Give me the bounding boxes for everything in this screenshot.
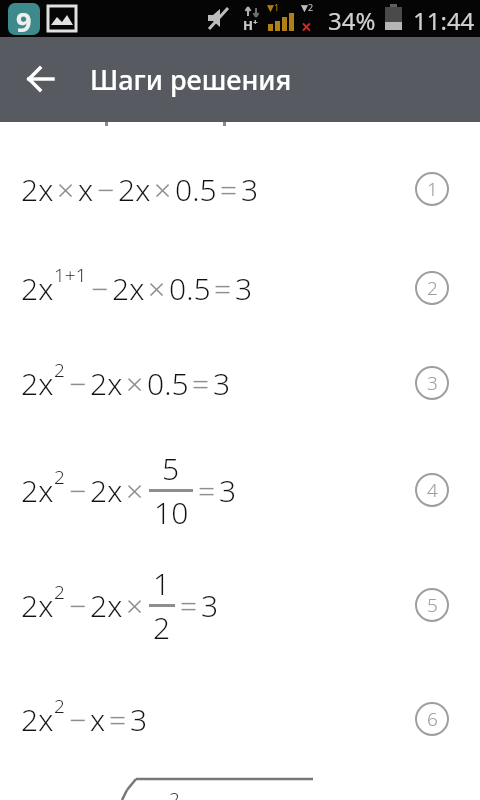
button[interactable]: 2x <box>21 669 148 769</box>
staticText: × <box>154 169 172 210</box>
staticText: ▼2 <box>301 1 314 13</box>
staticText: × <box>126 470 144 511</box>
button[interactable]: 5 <box>415 588 449 622</box>
staticText: − <box>69 585 87 626</box>
staticText: × <box>148 268 166 309</box>
staticText: × <box>57 169 75 210</box>
button[interactable]: 2x <box>21 139 259 239</box>
staticText: 2 <box>54 693 65 719</box>
staticText: 10 <box>154 492 189 533</box>
button[interactable]: 2x <box>21 333 231 433</box>
staticText: 2 <box>169 786 180 800</box>
staticText: 3 <box>427 370 438 396</box>
staticText: − <box>69 699 87 740</box>
staticText: = <box>192 363 210 404</box>
staticText: 3 <box>219 470 237 511</box>
staticText: ▼1 <box>267 1 280 13</box>
staticText: H⁺ <box>243 16 258 34</box>
staticText: 2x <box>112 268 145 309</box>
staticText: − <box>69 363 87 404</box>
staticText: − <box>91 268 109 309</box>
staticText: 2x <box>118 169 151 210</box>
staticText: 1 <box>427 176 438 202</box>
staticText: 0.5 <box>175 169 217 210</box>
staticText: 3 <box>213 363 231 404</box>
staticText: − <box>97 169 115 210</box>
button[interactable]: 2 <box>415 271 449 305</box>
staticText: 2 <box>54 357 65 383</box>
staticText: 2x <box>90 470 123 511</box>
staticText: 0.5 <box>147 363 189 404</box>
staticText: 1 <box>153 563 171 604</box>
staticText: 11:44 <box>413 4 475 37</box>
staticText: × <box>126 363 144 404</box>
staticText: x <box>78 169 94 210</box>
staticText: = <box>109 699 127 740</box>
staticText: × <box>301 14 312 40</box>
button[interactable]: 2x <box>21 555 219 655</box>
staticText: 2x <box>21 268 54 309</box>
staticText: × <box>126 585 144 626</box>
staticText: 5 <box>162 448 180 489</box>
staticText: 2x <box>140 792 173 800</box>
staticText: 2x <box>21 585 54 626</box>
button[interactable]: 4 <box>415 473 449 507</box>
staticText: − <box>69 470 87 511</box>
staticText: = <box>180 585 198 626</box>
button[interactable] <box>28 67 54 91</box>
staticText: x <box>90 699 106 740</box>
staticText: 3 <box>130 699 148 740</box>
staticText: 2 <box>427 275 438 301</box>
staticText: 2x <box>21 470 54 511</box>
staticText: 3 <box>241 169 259 210</box>
staticText: 9 <box>16 3 32 35</box>
staticText: 6 <box>427 706 438 732</box>
staticText: 5 <box>427 592 438 618</box>
staticText: 2x <box>21 363 54 404</box>
staticText: 2x <box>21 699 54 740</box>
button[interactable]: 6 <box>415 702 449 736</box>
staticText: 4 <box>427 477 438 503</box>
staticText: Шаги решения <box>90 61 292 98</box>
staticText: 34% <box>328 4 376 37</box>
button[interactable]: 3 <box>415 366 449 400</box>
staticText: 2x <box>21 169 54 210</box>
staticText: 2 <box>54 579 65 605</box>
staticText: 3 <box>201 585 219 626</box>
staticText: 0.5 <box>169 268 211 309</box>
staticText: 2x <box>90 363 123 404</box>
button[interactable]: 2x <box>21 238 253 338</box>
staticText: 2x <box>90 585 123 626</box>
staticText: 2 <box>153 607 171 648</box>
staticText: = <box>220 169 238 210</box>
staticText: 1+1 <box>54 262 87 288</box>
staticText: = <box>198 470 216 511</box>
button[interactable]: 1 <box>415 172 449 206</box>
staticText: 2 <box>54 464 65 490</box>
staticText: 3 <box>235 268 253 309</box>
staticText: = <box>214 268 232 309</box>
button[interactable]: 2x <box>21 440 237 540</box>
